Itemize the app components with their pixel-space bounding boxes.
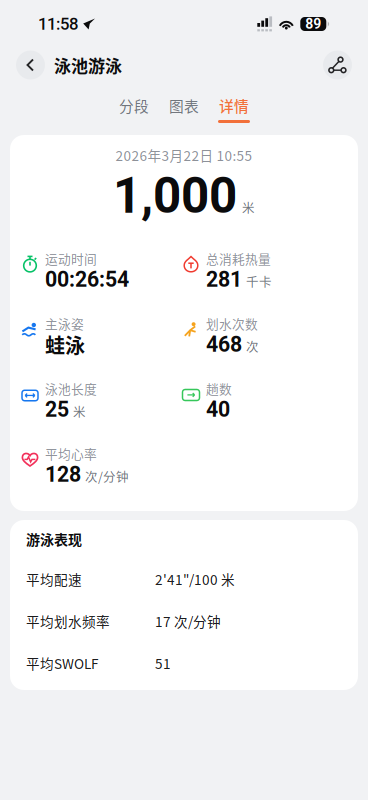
staticText: 平均配速 xyxy=(26,569,82,589)
button[interactable]: 分段 xyxy=(114,97,154,123)
staticText: 11:58 xyxy=(38,14,78,34)
staticText: 米 xyxy=(242,198,255,216)
staticText: 128 xyxy=(45,462,81,487)
staticText: 2'41"/100 米 xyxy=(155,569,235,589)
staticText: 平均心率 xyxy=(45,444,97,463)
staticText: 泳池游泳 xyxy=(54,53,122,77)
staticText: 468 xyxy=(206,332,242,357)
staticText: 图表 xyxy=(169,95,199,116)
staticText: 17 次/分钟 xyxy=(155,611,221,631)
staticText: 25 xyxy=(45,397,69,422)
staticText: 详情 xyxy=(219,95,249,116)
staticText: 次/分钟 xyxy=(85,467,129,485)
button[interactable]: 详情 xyxy=(214,97,254,123)
staticText: 00:26:54 xyxy=(45,267,129,292)
staticText: 米 xyxy=(73,402,86,420)
staticText: 2026年3月22日 10:55 xyxy=(115,145,252,165)
staticText: 281 xyxy=(206,267,242,292)
staticText: 划水次数 xyxy=(206,314,258,333)
staticText: 平均划水频率 xyxy=(26,611,110,631)
staticText: 89 xyxy=(305,16,321,32)
staticText: 1,000 xyxy=(113,167,237,225)
staticText: 51 xyxy=(155,653,171,673)
button[interactable]: Share xyxy=(323,50,352,79)
staticText: 趟数 xyxy=(206,379,232,398)
staticText: 40 xyxy=(206,397,230,422)
staticText: 总消耗热量 xyxy=(206,249,271,268)
staticText: 平均SWOLF xyxy=(26,653,99,673)
staticText: 分段 xyxy=(119,95,149,116)
staticText: 次 xyxy=(246,337,259,355)
staticText: 主泳姿 xyxy=(45,314,84,333)
staticText: 泳池长度 xyxy=(45,379,97,398)
staticText: 千卡 xyxy=(246,272,272,290)
button[interactable]: 图表 xyxy=(164,97,204,123)
staticText: 蛙泳 xyxy=(45,330,85,359)
button[interactable]: Back xyxy=(16,50,45,79)
staticText: 运动时间 xyxy=(45,249,97,268)
staticText: 游泳表现 xyxy=(26,529,82,549)
